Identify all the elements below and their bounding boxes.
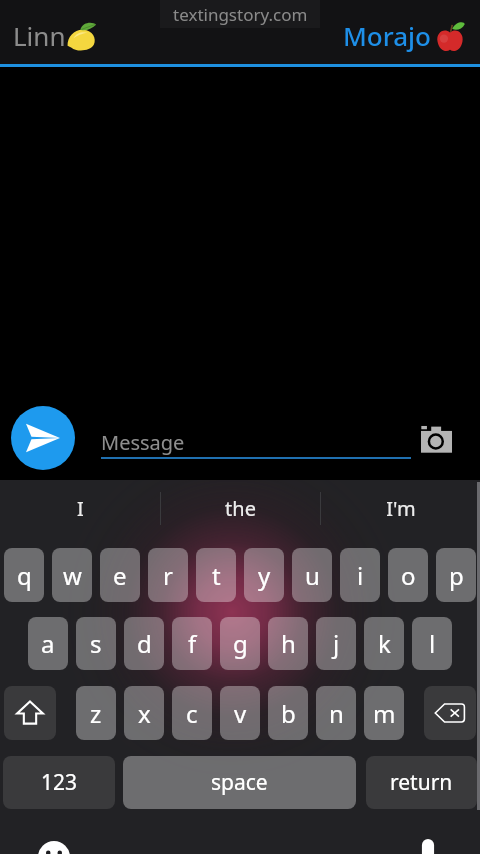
button[interactable]: p bbox=[436, 548, 476, 602]
button[interactable]: Send bbox=[11, 406, 75, 470]
staticText: z bbox=[90, 697, 102, 730]
staticText: Message bbox=[101, 429, 185, 456]
staticText: s bbox=[90, 627, 102, 660]
staticText: j bbox=[333, 627, 340, 660]
button[interactable]: l bbox=[412, 617, 452, 670]
button[interactable]: h bbox=[268, 617, 308, 670]
staticText: q bbox=[17, 559, 32, 592]
button[interactable]: Linn bbox=[13, 18, 97, 53]
button[interactable]: space bbox=[123, 756, 356, 809]
button[interactable]: I'm bbox=[321, 491, 480, 525]
button[interactable]: w bbox=[52, 548, 92, 602]
button[interactable]: z bbox=[76, 686, 116, 740]
button[interactable]: Voice input bbox=[412, 837, 444, 854]
staticText: k bbox=[378, 627, 391, 660]
button[interactable]: Shift bbox=[4, 686, 56, 740]
button[interactable]: the bbox=[161, 491, 320, 525]
button[interactable]: f bbox=[172, 617, 212, 670]
staticText: b bbox=[281, 697, 296, 730]
staticText: a bbox=[41, 627, 55, 660]
button[interactable]: k bbox=[364, 617, 404, 670]
button[interactable]: b bbox=[268, 686, 308, 740]
button[interactable]: Backspace bbox=[424, 686, 476, 740]
staticText: y bbox=[258, 559, 271, 592]
button[interactable]: e bbox=[100, 548, 140, 602]
staticText: return bbox=[390, 768, 453, 797]
button[interactable]: I bbox=[0, 491, 160, 525]
staticText: h bbox=[281, 627, 296, 660]
staticText: i bbox=[357, 559, 364, 592]
staticText: I'm bbox=[386, 495, 416, 522]
staticText: textingstory.com bbox=[173, 3, 308, 26]
staticText: Morajo bbox=[343, 18, 432, 53]
button[interactable]: o bbox=[388, 548, 428, 602]
button[interactable]: r bbox=[148, 548, 188, 602]
button[interactable]: j bbox=[316, 617, 356, 670]
staticText: t bbox=[212, 559, 221, 592]
button[interactable]: 123 bbox=[3, 756, 115, 809]
button[interactable]: i bbox=[340, 548, 380, 602]
button[interactable]: d bbox=[124, 617, 164, 670]
staticText: w bbox=[63, 559, 82, 592]
staticText: d bbox=[137, 627, 152, 660]
staticText: x bbox=[138, 697, 151, 730]
button[interactable]: c bbox=[172, 686, 212, 740]
staticText: e bbox=[113, 559, 127, 592]
button[interactable]: g bbox=[220, 617, 260, 670]
button[interactable]: return bbox=[366, 756, 477, 809]
staticText: u bbox=[305, 559, 320, 592]
button[interactable]: t bbox=[196, 548, 236, 602]
staticText: space bbox=[211, 768, 268, 797]
button[interactable]: v bbox=[220, 686, 260, 740]
button[interactable]: Camera bbox=[419, 422, 453, 456]
button[interactable]: s bbox=[76, 617, 116, 670]
staticText: c bbox=[186, 697, 198, 730]
staticText: o bbox=[401, 559, 416, 592]
button[interactable]: m bbox=[364, 686, 404, 740]
staticText: g bbox=[233, 627, 248, 660]
staticText: 123 bbox=[41, 768, 78, 797]
button[interactable]: x bbox=[124, 686, 164, 740]
staticText: l bbox=[429, 627, 436, 660]
staticText: the bbox=[225, 495, 256, 522]
staticText: Linn bbox=[13, 18, 66, 53]
button[interactable]: Morajo bbox=[343, 18, 464, 53]
staticText: I bbox=[77, 495, 84, 522]
button[interactable]: q bbox=[4, 548, 44, 602]
button[interactable]: u bbox=[292, 548, 332, 602]
staticText: n bbox=[329, 697, 344, 730]
button[interactable]: a bbox=[28, 617, 68, 670]
staticText: p bbox=[449, 559, 464, 592]
staticText: v bbox=[234, 697, 247, 730]
staticText: r bbox=[163, 559, 173, 592]
staticText: m bbox=[373, 697, 396, 730]
button[interactable]: Emoji keyboard bbox=[38, 841, 70, 854]
button[interactable]: y bbox=[244, 548, 284, 602]
staticText: f bbox=[188, 627, 197, 660]
button[interactable]: n bbox=[316, 686, 356, 740]
